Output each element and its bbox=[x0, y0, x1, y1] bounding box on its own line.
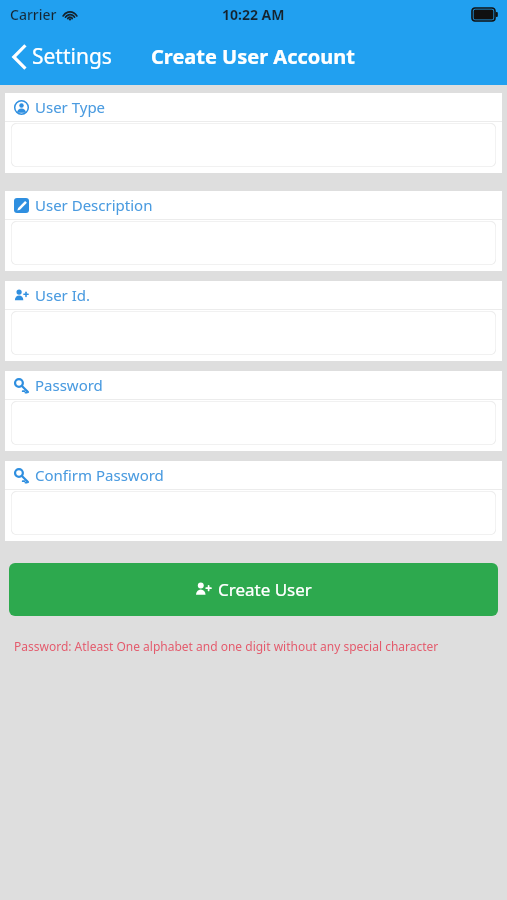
staticText: 10:22 AM bbox=[222, 5, 285, 24]
staticText: User Description bbox=[35, 195, 153, 215]
button[interactable]: User Id. bbox=[5, 281, 502, 361]
staticText: User Type bbox=[35, 97, 106, 117]
other: Back bbox=[12, 45, 27, 69]
button[interactable]: Back bbox=[0, 36, 122, 77]
staticText: Password: Atleast One alphabet and one d… bbox=[14, 638, 439, 654]
staticText: Confirm Password bbox=[35, 465, 164, 485]
staticText: User Id. bbox=[35, 285, 91, 305]
staticText: Carrier bbox=[10, 5, 57, 24]
staticText: Create User bbox=[218, 578, 312, 601]
button[interactable]: Confirm Password bbox=[5, 461, 502, 541]
button[interactable]: Password bbox=[5, 371, 502, 451]
button[interactable]: User Description bbox=[5, 191, 502, 271]
staticText: Create User Account bbox=[151, 43, 356, 70]
staticText: Password bbox=[35, 375, 103, 395]
button[interactable]: User Type bbox=[5, 93, 502, 173]
staticText: Settings bbox=[32, 42, 112, 71]
button[interactable]: Create User bbox=[9, 563, 498, 616]
